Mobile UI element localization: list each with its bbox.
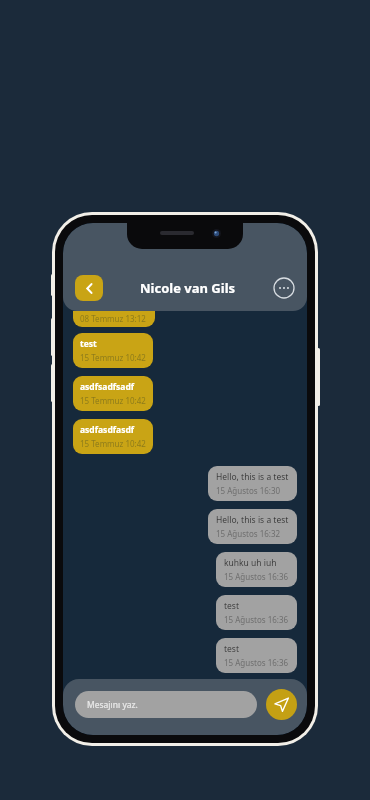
button[interactable]: Mesajını yaz. — [75, 691, 257, 718]
staticText: Hello, this is a test — [216, 514, 289, 526]
staticText: 15 Ağustos 16:36 — [224, 571, 289, 582]
staticText: 15 Temmuz 10:42 — [80, 438, 146, 449]
button[interactable]: test — [73, 333, 153, 368]
staticText: 15 Ağustos 16:32 — [216, 528, 281, 539]
button[interactable]: test — [216, 595, 297, 630]
staticText: 08 Temmuz 13:12 — [80, 313, 146, 324]
button[interactable]: kuhku uh iuh — [216, 552, 297, 587]
staticText: 15 Ağustos 16:30 — [216, 485, 281, 496]
button[interactable]: Hello, this is a test — [208, 509, 297, 544]
staticText: 15 Ağustos 16:36 — [224, 657, 289, 668]
button[interactable]: test — [216, 638, 297, 673]
staticText: asdfasdfasdf — [80, 424, 135, 436]
staticText: 15 Temmuz 10:42 — [80, 395, 146, 406]
button[interactable]: More options — [273, 277, 295, 299]
button[interactable]: asdfasdfasdf — [73, 419, 153, 454]
staticText: test — [80, 338, 97, 350]
staticText: test — [224, 600, 240, 612]
staticText: Hello, this is a test — [216, 471, 289, 483]
staticText: Nicole van Gils — [140, 279, 236, 297]
staticText: 15 Temmuz 10:42 — [80, 352, 146, 363]
staticText: asdfsadfsadf — [80, 381, 135, 393]
button[interactable]: asdfsadfsadf — [73, 376, 153, 411]
staticText: Mesajını yaz. — [87, 699, 138, 711]
staticText: test — [224, 643, 240, 655]
staticText: kuhku uh iuh — [224, 557, 277, 569]
button[interactable]: Send — [266, 689, 297, 720]
staticText: 15 Ağustos 16:36 — [224, 614, 289, 625]
button[interactable]: Hello, this is a test — [208, 466, 297, 501]
button[interactable]: 08 Temmuz 13:12 — [73, 311, 155, 327]
button[interactable]: Back — [75, 275, 103, 301]
